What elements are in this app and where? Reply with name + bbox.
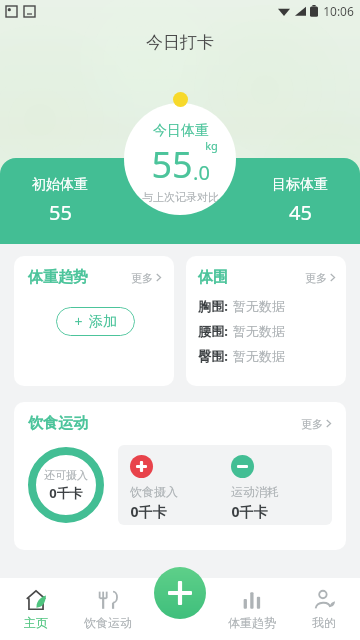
staticText: 饮食运动 [28,414,88,433]
button[interactable]: 体重趋势 [14,256,174,386]
button[interactable]: 体围 [186,256,346,386]
staticText: 今日打卡 [146,32,214,53]
staticText: 饮食摄入 [130,484,178,499]
button[interactable]: 运动消耗 [231,455,332,521]
staticText: + [74,312,83,331]
staticText: 暂无数据 [233,323,285,339]
staticText: 55 [49,199,72,226]
staticText: 10:06 [323,3,354,19]
button[interactable]: 饮食运动 [14,402,346,550]
staticText: 目标体重 [272,176,328,194]
staticText: 体围 [198,268,228,287]
staticText: 55 [151,140,193,189]
staticText: 还可摄入 [44,468,88,482]
staticText: 更多 [301,417,323,431]
button[interactable]: 饮食摄入 [130,455,231,521]
button[interactable]: 今日体重 [124,103,236,215]
staticText: 体重趋势 [28,268,88,287]
button[interactable]: 饮食运动 [72,578,144,640]
staticText: 更多 [305,271,327,285]
staticText: 与上次记录对比 [142,190,219,204]
staticText: 体重趋势 [228,615,276,630]
staticText: 胸围: [198,297,228,315]
staticText: 暂无数据 [233,348,285,364]
staticText: 腰围: [198,322,228,340]
staticText: 运动消耗 [231,484,279,499]
staticText: 0千卡 [130,502,167,521]
staticText: 添加 [89,313,117,331]
staticText: 主页 [24,615,48,630]
staticText: 初始体重 [32,176,88,194]
staticText: 暂无数据 [233,298,285,314]
button[interactable]: + [56,307,135,336]
staticText: 0千卡 [49,484,83,502]
staticText: 更多 [131,271,153,285]
staticText: 今日体重 [153,122,209,140]
staticText: 45 [289,199,312,226]
staticText: 臀围: [198,347,228,365]
button[interactable]: 添加记录 [154,567,206,619]
staticText: .0 [193,159,210,186]
staticText: 饮食运动 [84,615,132,630]
button[interactable]: 初始体重 [0,176,120,226]
button[interactable]: 主页 [0,578,72,640]
staticText: 0千卡 [231,502,268,521]
button[interactable]: 我的 [288,578,360,640]
button[interactable]: 体重趋势 [216,578,288,640]
staticText: 我的 [312,615,336,630]
staticText: kg [205,138,218,153]
button[interactable]: 目标体重 [240,176,360,226]
